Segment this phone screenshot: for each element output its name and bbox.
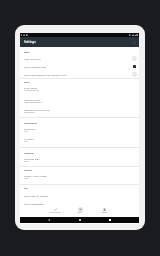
staticText: Intensity chart duration — [24, 108, 50, 111]
staticText: Theme / Color mode — [24, 174, 47, 177]
button[interactable]: Intensity chart duration — [20, 108, 139, 114]
button[interactable]: Intensity scale — [20, 98, 139, 104]
staticText: Accelerated 2D — [24, 89, 39, 92]
other: Back — [48, 219, 50, 221]
staticText: Frequency — [24, 127, 36, 130]
staticText: Translate logs — [24, 157, 40, 160]
staticText: Dark — [24, 177, 29, 180]
staticText: Interface — [24, 169, 33, 171]
button[interactable]: Theme / Color mode — [20, 174, 139, 180]
staticText: Keep screen on — [24, 57, 133, 60]
staticText: Work in background — [24, 65, 133, 68]
staticText: Chart mode — [24, 86, 38, 89]
button[interactable]: Stop measurements that battery is low — [20, 70, 139, 78]
staticText: none — [24, 160, 30, 163]
staticText: Measurements — [24, 122, 38, 124]
button[interactable]: More options — [132, 40, 137, 45]
staticText: Charts — [24, 81, 30, 83]
staticText: Install app on a watch — [24, 194, 49, 197]
staticText: Charts — [77, 211, 83, 213]
button[interactable]: Keep screen on — [20, 54, 139, 62]
button[interactable]: Work in background — [20, 62, 139, 70]
staticText: Accuracy — [24, 137, 34, 140]
button[interactable]: Measurements — [44, 208, 66, 217]
button[interactable]: Charts — [69, 208, 91, 217]
staticText: More applications — [24, 202, 44, 205]
button[interactable]: Accuracy — [20, 137, 139, 143]
button[interactable]: Settings — [20, 37, 139, 47]
staticText: null — [24, 140, 28, 143]
staticText: 30 seconds — [24, 111, 35, 114]
button[interactable]: Settings — [93, 208, 115, 217]
staticText: Misc — [24, 187, 28, 189]
staticText: Stop measurements that battery is low — [24, 73, 133, 76]
button[interactable]: Chart mode — [20, 86, 139, 92]
staticText: Medium precision — [24, 101, 42, 104]
staticText: Measurements — [49, 211, 61, 213]
staticText: Settings — [101, 211, 108, 213]
staticText: Settings — [24, 40, 36, 44]
staticText: Illuminants — [24, 152, 35, 154]
button[interactable]: Install app on a watch — [20, 192, 139, 199]
button[interactable]: More applications — [20, 200, 139, 207]
button[interactable]: Frequency — [20, 127, 139, 133]
button[interactable]: Translate logs — [20, 157, 139, 163]
staticText: Intensity scale — [24, 98, 40, 101]
staticText: null — [24, 130, 28, 133]
staticText: Sound — [24, 51, 30, 53]
